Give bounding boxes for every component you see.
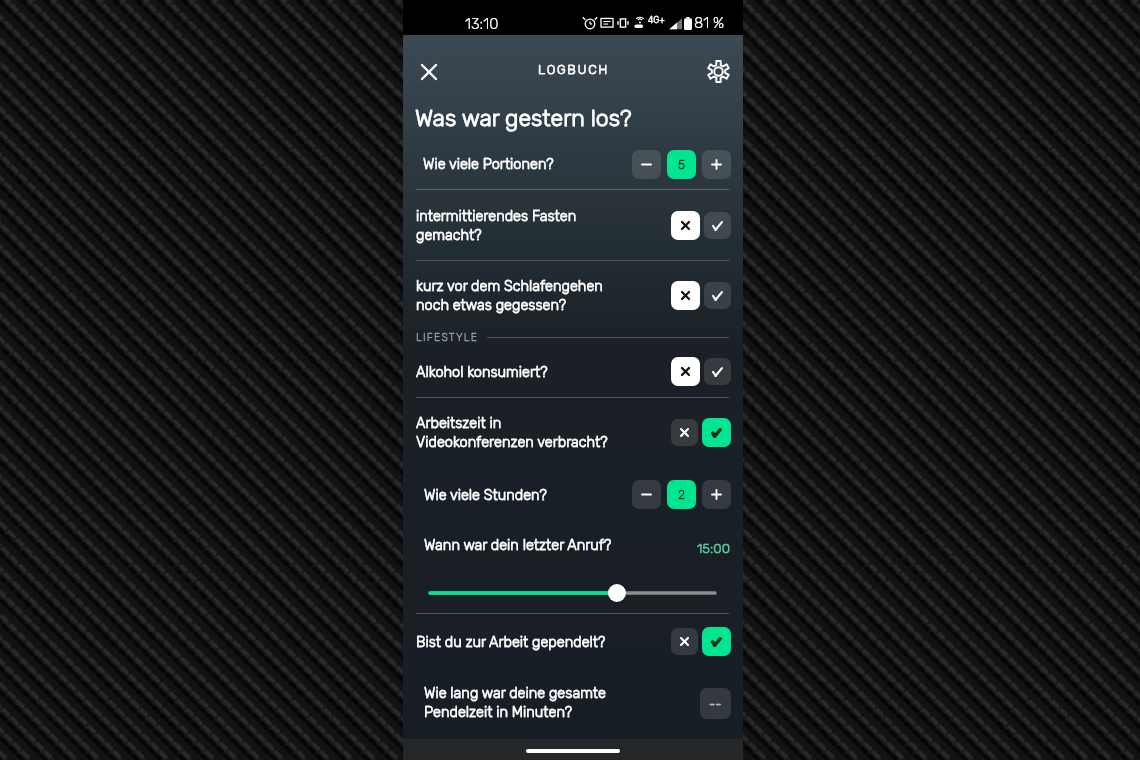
staticText: Bist du zur Arbeit gependelt? — [416, 633, 671, 650]
button[interactable]: Decrease — [632, 480, 661, 509]
staticText: Wie viele Portionen? — [423, 155, 632, 172]
staticText: 5 — [678, 157, 686, 172]
button[interactable]: No — [671, 419, 698, 446]
button[interactable]: No — [671, 281, 700, 310]
staticText: LOGBUCH — [538, 62, 610, 77]
staticText: Wann war dein letzter Anruf? — [424, 536, 697, 553]
staticText: intermittierendes Fasten gemacht? — [416, 207, 671, 244]
staticText: 4G+ — [648, 15, 665, 26]
button[interactable]: No — [671, 211, 700, 240]
button[interactable]: Increase — [702, 480, 731, 509]
button[interactable]: Yes — [704, 358, 731, 385]
staticText: 2 — [678, 487, 686, 502]
button[interactable]: Yes — [704, 212, 731, 239]
button[interactable]: Enter minutes — [700, 688, 731, 719]
staticText: 15:00 — [697, 540, 730, 556]
staticText: kurz vor dem Schlafengehen noch etwas ge… — [416, 277, 671, 314]
button[interactable]: Yes — [702, 627, 731, 656]
button[interactable]: 5 — [667, 150, 696, 179]
button[interactable]: Close — [412, 55, 446, 89]
button[interactable]: No — [671, 628, 698, 655]
button[interactable]: 2 — [667, 480, 696, 509]
button[interactable]: Time slider — [403, 566, 743, 613]
staticText: Wie viele Stunden? — [424, 486, 632, 503]
staticText: -- — [709, 696, 722, 711]
button[interactable]: Increase — [702, 150, 731, 179]
button[interactable]: Settings — [701, 54, 735, 88]
staticText: LIFESTYLE — [416, 331, 479, 343]
staticText: Wie lang war deine gesamte Pendelzeit in… — [424, 684, 700, 721]
button[interactable]: Decrease — [632, 150, 661, 179]
staticText: 81 % — [694, 14, 725, 32]
button[interactable]: No — [671, 357, 700, 386]
button[interactable]: Yes — [704, 282, 731, 309]
staticText: Was war gestern los? — [415, 104, 632, 131]
button[interactable]: Yes — [702, 418, 731, 447]
staticText: Alkohol konsumiert? — [416, 363, 671, 380]
staticText: Arbeitszeit in Videokonferenzen verbrach… — [416, 414, 671, 451]
staticText: 13:10 — [465, 15, 499, 33]
